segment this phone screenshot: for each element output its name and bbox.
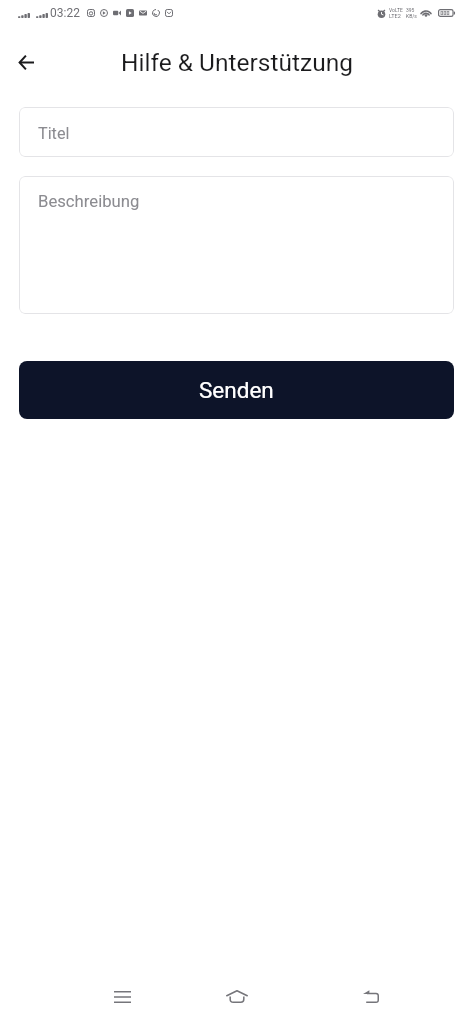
staticText: Beschreibung bbox=[38, 192, 140, 212]
staticText: VoLTE bbox=[389, 7, 403, 13]
button[interactable]: Titel bbox=[19, 107, 454, 157]
staticText: Hilfe & Unterstützung bbox=[121, 48, 353, 77]
staticText: LTE2 bbox=[389, 13, 401, 20]
staticText: Titel bbox=[38, 124, 70, 143]
button[interactable]: Back bbox=[4, 40, 48, 84]
staticText: KB/s bbox=[406, 13, 417, 19]
button[interactable]: Back bbox=[347, 973, 395, 1021]
staticText: 395 bbox=[406, 7, 415, 13]
button[interactable]: Recent apps bbox=[98, 973, 146, 1021]
button[interactable]: Beschreibung bbox=[19, 176, 454, 314]
staticText: Senden bbox=[199, 377, 274, 403]
staticText: 03:22 bbox=[50, 6, 80, 20]
button[interactable]: Home bbox=[213, 972, 261, 1020]
button[interactable]: Senden bbox=[19, 361, 454, 419]
